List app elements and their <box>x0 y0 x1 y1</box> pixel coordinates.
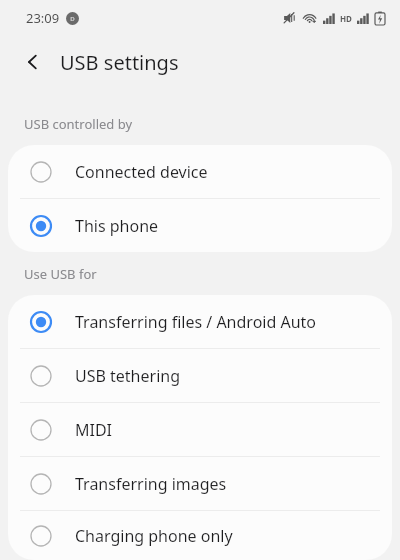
staticText: Use USB for <box>24 265 97 283</box>
button[interactable]: Transferring images <box>8 457 392 510</box>
staticText: Connected device <box>75 161 208 183</box>
staticText: USB settings <box>60 49 179 76</box>
staticText: HD <box>340 13 352 24</box>
button[interactable]: MIDI <box>8 403 392 456</box>
button[interactable]: Transferring files / Android Auto <box>8 295 392 348</box>
button[interactable]: Charging phone only <box>8 511 392 560</box>
staticText: USB tethering <box>75 365 180 387</box>
staticText: Transferring files / Android Auto <box>75 311 317 333</box>
button[interactable]: This phone <box>8 199 392 252</box>
staticText: USB controlled by <box>24 115 133 133</box>
staticText: This phone <box>75 215 159 237</box>
staticText: Transferring images <box>75 473 227 495</box>
button[interactable]: USB tethering <box>8 349 392 402</box>
button[interactable]: Back <box>14 43 52 81</box>
staticText: MIDI <box>75 419 113 441</box>
button[interactable]: Connected device <box>8 145 392 198</box>
staticText: Charging phone only <box>75 525 233 547</box>
staticText: D <box>70 15 75 23</box>
staticText: 23:09 <box>26 9 60 27</box>
